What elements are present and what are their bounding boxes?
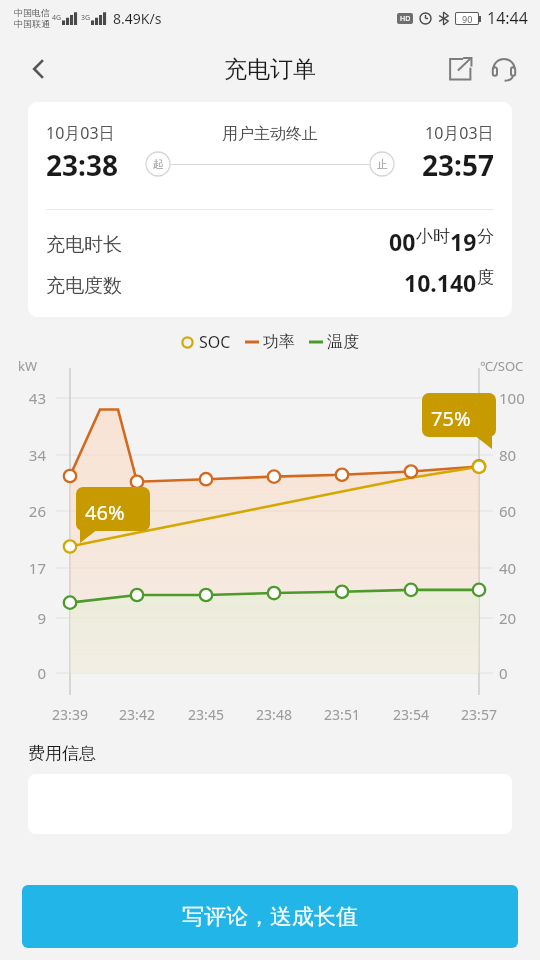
- staticText: 小时: [416, 226, 450, 247]
- staticText: 中国电信: [14, 7, 50, 18]
- staticText: 17: [12, 558, 46, 578]
- staticText: kW: [18, 357, 38, 375]
- staticText: 23:51: [312, 705, 372, 724]
- staticText: 90: [462, 13, 473, 24]
- staticText: 充电订单: [224, 55, 316, 84]
- staticText: 14:44: [487, 7, 528, 29]
- staticText: 00: [389, 226, 416, 257]
- staticText: 80: [499, 445, 517, 465]
- staticText: 19: [450, 226, 477, 257]
- staticText: 9: [12, 608, 46, 628]
- staticText: 费用信息: [28, 743, 96, 764]
- staticText: 充电度数: [46, 274, 122, 298]
- staticText: 23:48: [244, 705, 304, 724]
- staticText: SOC: [199, 331, 231, 353]
- staticText: 60: [499, 501, 517, 521]
- staticText: 34: [12, 445, 46, 465]
- staticText: 23:45: [176, 705, 236, 724]
- staticText: 23:39: [40, 705, 100, 724]
- staticText: 23:54: [381, 705, 441, 724]
- staticText: 43: [12, 388, 46, 408]
- staticText: 3G: [81, 13, 91, 23]
- staticText: 度: [477, 267, 494, 288]
- staticText: 用户主动终止: [222, 124, 318, 144]
- staticText: 中国联通: [14, 18, 50, 29]
- staticText: ℃/SOC: [480, 357, 524, 375]
- staticText: 止: [377, 157, 388, 171]
- staticText: 起: [153, 157, 164, 171]
- staticText: 75%: [431, 405, 471, 432]
- staticText: 23:38: [46, 146, 118, 184]
- staticText: 功率: [263, 332, 295, 352]
- staticText: 40: [499, 558, 517, 578]
- staticText: 100: [499, 388, 525, 408]
- staticText: 26: [12, 501, 46, 521]
- staticText: 10.140: [404, 267, 477, 298]
- staticText: 10月03日: [425, 122, 494, 144]
- staticText: 0: [12, 663, 46, 683]
- staticText: 温度: [327, 332, 359, 352]
- staticText: 分: [477, 226, 494, 247]
- button[interactable]: Share: [438, 47, 482, 91]
- staticText: 10月03日: [46, 122, 115, 144]
- staticText: 23:57: [449, 705, 509, 724]
- staticText: 20: [499, 608, 517, 628]
- staticText: 8.49K/s: [113, 9, 162, 28]
- button[interactable]: Customer service: [482, 47, 526, 91]
- staticText: 23:42: [107, 705, 167, 724]
- staticText: 充电时长: [46, 233, 122, 257]
- staticText: 23:57: [422, 146, 494, 184]
- staticText: 写评论，送成长值: [182, 903, 358, 931]
- staticText: 46%: [85, 499, 125, 526]
- staticText: HD: [400, 14, 411, 24]
- staticText: 4G: [52, 13, 62, 23]
- staticText: 0: [499, 663, 508, 683]
- button[interactable]: Back: [16, 46, 62, 92]
- button[interactable]: 写评论，送成长值: [22, 885, 518, 948]
